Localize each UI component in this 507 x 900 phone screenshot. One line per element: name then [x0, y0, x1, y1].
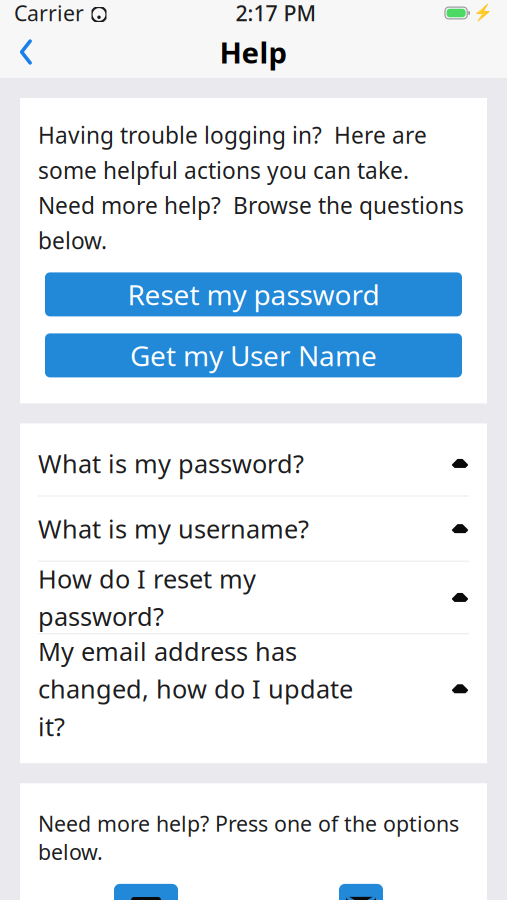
button[interactable]: Reset my password — [45, 272, 462, 316]
button[interactable]: Back — [0, 26, 52, 78]
button[interactable]: My email address has changed, how do I u… — [20, 634, 487, 743]
button[interactable]: What is my password? — [20, 431, 487, 495]
button[interactable]: Press here to chat with a live represent… — [38, 884, 253, 900]
button[interactable]: Email us at info@integritystaffing.com — [253, 884, 468, 900]
staticText: What is my password? — [38, 447, 304, 480]
staticText: Help — [219, 32, 287, 71]
button[interactable]: What is my username? — [20, 497, 487, 561]
staticText: How do I reset my password? — [38, 562, 256, 633]
staticText: ⚡ — [473, 4, 493, 22]
button[interactable]: How do I reset my password? — [20, 562, 487, 633]
button[interactable]: Get my User Name — [45, 333, 462, 377]
staticText: Reset my password — [127, 276, 379, 313]
staticText: Having trouble logging in? Here are some… — [38, 120, 464, 255]
staticText: Get my User Name — [130, 337, 377, 374]
staticText: 2:17 PM — [235, 0, 316, 27]
staticText: Need more help? Press one of the options… — [38, 809, 459, 866]
staticText: My email address has changed, how do I u… — [38, 634, 353, 743]
staticText: What is my username? — [38, 512, 309, 545]
staticText: Carrier — [14, 0, 84, 27]
